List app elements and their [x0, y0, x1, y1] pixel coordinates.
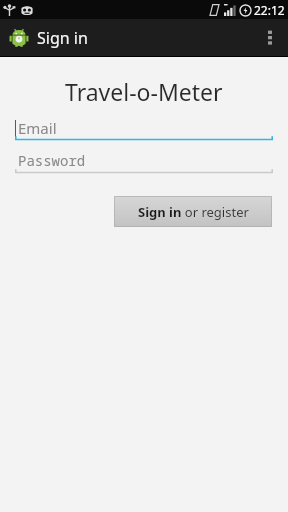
button[interactable]: More options: [252, 19, 288, 56]
staticText: Password: [18, 151, 86, 170]
staticText: 22:12: [254, 2, 285, 18]
staticText: Sign in: [37, 27, 88, 49]
button[interactable]: Password: [15, 150, 273, 175]
staticText: Sign in or register: [138, 203, 249, 221]
button[interactable]: Sign in or register: [114, 196, 272, 227]
button[interactable]: Sign in: [8, 27, 88, 49]
button[interactable]: Email: [15, 117, 273, 142]
staticText: Travel-o-Meter: [65, 76, 223, 107]
staticText: Email: [18, 118, 57, 138]
